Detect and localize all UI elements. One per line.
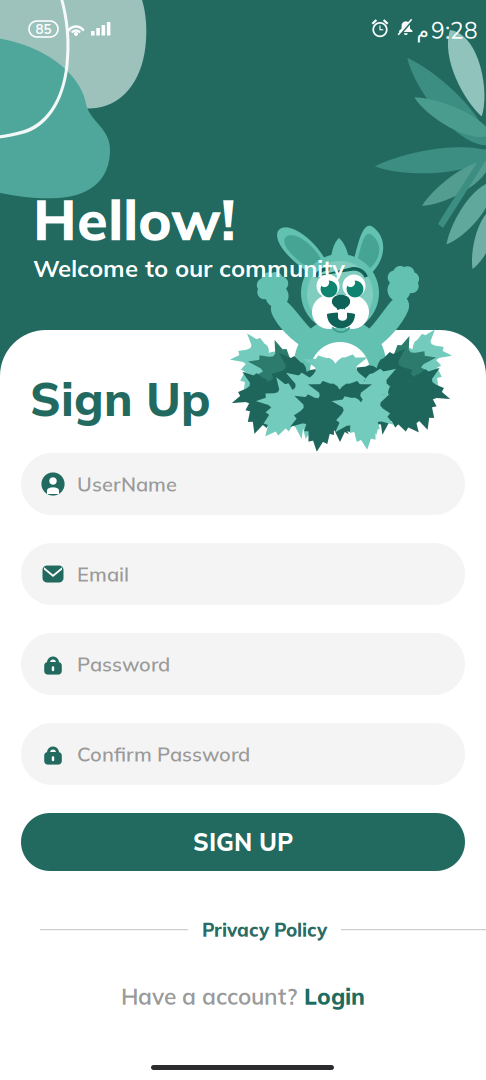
staticText: SIGN UP bbox=[193, 827, 293, 857]
staticText: Confirm Password bbox=[77, 741, 250, 767]
staticText: Sign Up bbox=[30, 369, 210, 428]
button[interactable]: Login bbox=[304, 982, 365, 1010]
button[interactable]: Privacy Policy bbox=[202, 918, 327, 941]
staticText: Hellow! bbox=[33, 184, 236, 254]
button[interactable]: UserName bbox=[21, 453, 465, 515]
staticText: 85 bbox=[35, 21, 51, 37]
staticText: Password bbox=[77, 651, 170, 677]
staticText: Welcome to our community bbox=[33, 253, 345, 283]
staticText: Have a account? bbox=[121, 982, 297, 1010]
staticText: Login bbox=[304, 982, 365, 1010]
staticText: م bbox=[416, 19, 428, 42]
button[interactable]: Password bbox=[21, 633, 465, 695]
button[interactable]: SIGN UP bbox=[21, 813, 465, 871]
button[interactable]: Email bbox=[21, 543, 465, 605]
button[interactable]: Confirm Password bbox=[21, 723, 465, 785]
staticText: UserName bbox=[77, 471, 177, 497]
staticText: 9:28 bbox=[431, 16, 478, 44]
staticText: Email bbox=[77, 561, 129, 587]
staticText: Privacy Policy bbox=[202, 918, 327, 941]
